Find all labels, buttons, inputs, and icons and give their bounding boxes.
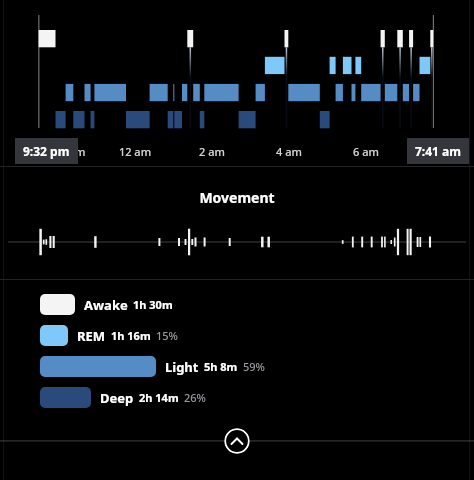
staticText: 4 am xyxy=(259,144,319,159)
button[interactable]: Deep xyxy=(0,382,474,413)
staticText: 2h 14m xyxy=(139,390,179,405)
button[interactable]: Collapse xyxy=(224,428,250,454)
staticText: 59% xyxy=(243,359,265,374)
button[interactable]: Light xyxy=(0,351,474,382)
staticText: Deep xyxy=(100,389,134,407)
button[interactable]: 9:32 pm xyxy=(15,138,78,164)
staticText: Movement xyxy=(0,188,474,207)
button[interactable]: Awake xyxy=(0,289,474,320)
staticText: Light xyxy=(165,358,199,376)
staticText: 1h 30m xyxy=(133,297,173,312)
staticText: 5h 8m xyxy=(204,359,238,374)
staticText: 12 am xyxy=(105,144,165,159)
staticText: 6 am xyxy=(336,144,396,159)
staticText: 10 pm xyxy=(39,144,99,159)
button[interactable]: 7:41 am xyxy=(407,138,469,164)
button[interactable]: REM xyxy=(0,320,474,351)
staticText: 1h 16m xyxy=(111,328,151,343)
staticText: 9:32 pm xyxy=(23,143,70,159)
staticText: Awake xyxy=(84,296,128,314)
staticText: 7:41 am xyxy=(415,143,461,159)
staticText: 15% xyxy=(156,328,178,343)
staticText: 2 am xyxy=(182,144,242,159)
staticText: REM xyxy=(77,327,106,345)
staticText: 26% xyxy=(184,390,206,405)
